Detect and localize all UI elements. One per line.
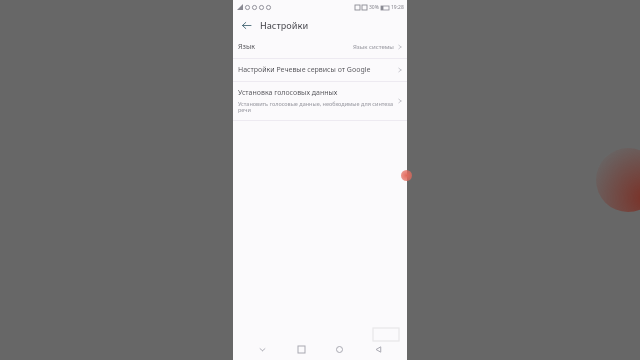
button[interactable]: Главный экран xyxy=(329,339,349,359)
staticText: Установка голосовых данных xyxy=(238,88,338,98)
button[interactable]: Настройки Речевые сервисы от Google xyxy=(233,59,407,81)
button[interactable]: Установка голосовых данных xyxy=(233,82,407,120)
staticText: 19:28 xyxy=(391,4,404,11)
staticText: Установить голосовые данные, необходимые… xyxy=(238,100,397,114)
staticText: Язык xyxy=(238,42,255,52)
button[interactable]: Обзор xyxy=(291,339,311,359)
button[interactable]: Назад xyxy=(368,339,388,359)
button[interactable]: Назад xyxy=(238,17,254,33)
staticText: Настройки xyxy=(260,19,309,31)
staticText: Настройки Речевые сервисы от Google xyxy=(238,65,371,75)
button[interactable]: Язык xyxy=(233,36,407,58)
staticText: 30% xyxy=(369,4,379,11)
staticText: Язык системы xyxy=(353,43,394,51)
button[interactable]: Скрыть xyxy=(252,339,272,359)
